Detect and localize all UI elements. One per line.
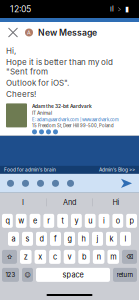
button[interactable]: Close — [6, 25, 20, 39]
button[interactable]: o — [112, 214, 123, 228]
staticText: return — [116, 271, 133, 278]
button[interactable]: I — [0, 193, 46, 212]
button[interactable]: v — [64, 250, 75, 264]
button[interactable]: g — [64, 232, 75, 246]
staticText: A — [27, 29, 31, 36]
button[interactable]: u — [85, 214, 96, 228]
button[interactable]: return — [113, 268, 137, 282]
button[interactable]: n — [93, 250, 104, 264]
staticText: ıl ﹥ ▮ — [110, 4, 129, 14]
staticText: space — [62, 270, 83, 279]
staticText: p — [130, 216, 134, 225]
button[interactable]: z — [20, 250, 32, 264]
button[interactable]: And — [46, 193, 92, 212]
button[interactable]: f — [50, 232, 61, 246]
staticText: Food for admin's brain — [4, 167, 56, 173]
staticText: g — [67, 234, 71, 243]
staticText: ⌫ — [126, 253, 133, 260]
staticText: Hi, — [6, 46, 16, 56]
button[interactable]: ⌫ — [122, 250, 137, 264]
staticText: 15 Freedom St, Deer Hill 99-500, Poland — [32, 123, 114, 128]
staticText: d — [39, 234, 43, 243]
button[interactable]: c — [49, 250, 61, 264]
staticText: E: adam@aardvark.com | www.aardvark.com — [32, 117, 119, 122]
staticText: Hope it is better than my old "Sent from — [6, 57, 113, 77]
staticText: s — [25, 234, 29, 243]
staticText: Hi — [112, 198, 119, 207]
button[interactable]: ☺ — [22, 268, 33, 282]
button[interactable]: k — [106, 232, 117, 246]
button[interactable]: x — [35, 250, 46, 264]
staticText: Cheers! — [6, 89, 36, 99]
button[interactable]: Send — [121, 179, 132, 188]
button[interactable]: space — [36, 268, 110, 282]
staticText: v — [67, 252, 71, 261]
button[interactable]: s — [22, 232, 33, 246]
staticText: h — [81, 234, 85, 243]
button[interactable]: 123 — [2, 268, 19, 282]
staticText: x — [38, 252, 42, 261]
staticText: u — [88, 216, 92, 225]
button[interactable]: d — [36, 232, 47, 246]
staticText: c — [53, 252, 57, 261]
staticText: f — [54, 234, 57, 243]
button[interactable]: y — [71, 214, 82, 228]
staticText: i — [103, 216, 105, 225]
staticText: l — [124, 234, 126, 243]
button[interactable]: j — [92, 232, 103, 246]
button[interactable]: h — [78, 232, 89, 246]
staticText: o — [116, 216, 120, 225]
button[interactable]: ⇧ — [2, 250, 17, 264]
staticText: ☺ — [24, 271, 30, 278]
button[interactable]: a — [8, 232, 19, 246]
staticText: b — [82, 252, 86, 261]
button[interactable]: t — [57, 214, 68, 228]
staticText: And — [63, 198, 76, 207]
staticText: e — [33, 216, 37, 225]
staticText: q — [5, 216, 9, 225]
staticText: k — [109, 234, 113, 243]
staticText: z — [24, 252, 28, 261]
staticText: a — [11, 234, 15, 243]
staticText: 12:05 — [10, 4, 31, 14]
button[interactable]: w — [16, 214, 27, 228]
button[interactable]: q — [2, 214, 13, 228]
staticText: New Message — [38, 27, 97, 38]
staticText: Adam the 32-bit Aardvark — [32, 103, 92, 109]
staticText: IT Animal — [32, 110, 52, 116]
staticText: 123 — [5, 271, 15, 278]
staticText: r — [47, 216, 50, 225]
button[interactable]: p — [126, 214, 137, 228]
button[interactable]: r — [43, 214, 54, 228]
staticText: ⇧ — [6, 253, 12, 260]
staticText: m — [110, 252, 116, 261]
button[interactable]: e — [30, 214, 40, 228]
button[interactable]: m — [107, 250, 119, 264]
staticText: n — [97, 252, 101, 261]
button[interactable]: l — [120, 232, 131, 246]
staticText: w — [18, 216, 24, 225]
staticText: I — [22, 198, 24, 207]
staticText: Outlook for iOS". — [6, 78, 69, 88]
staticText: t — [62, 216, 64, 225]
staticText: y — [74, 216, 78, 225]
button[interactable]: b — [78, 250, 90, 264]
button[interactable]: i — [99, 214, 109, 228]
button[interactable]: Hi — [93, 193, 139, 212]
staticText: j — [96, 234, 98, 243]
staticText: Admin's Blog >> — [99, 167, 135, 173]
